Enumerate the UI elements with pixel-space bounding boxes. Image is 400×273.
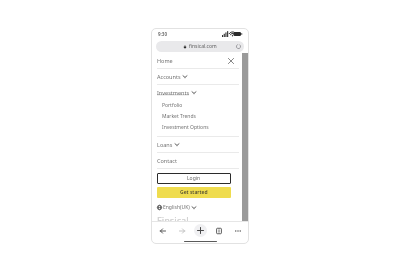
staticText: Home: [157, 57, 173, 64]
staticText: Portfolio: [162, 102, 183, 109]
button[interactable]: English(UK): [157, 204, 196, 211]
staticText: English(UK): [163, 204, 190, 211]
button[interactable]: Close menu: [226, 56, 235, 65]
button[interactable]: Forward: [175, 224, 188, 237]
button[interactable]: More options: [231, 224, 244, 237]
button[interactable]: Investments: [151, 85, 249, 100]
button[interactable]: Home: [151, 53, 249, 68]
staticText: Finsical: [157, 214, 189, 221]
button[interactable]: Accounts: [151, 69, 249, 84]
button[interactable]: Reload page: [235, 43, 242, 50]
button[interactable]: Loans: [151, 137, 249, 152]
staticText: finsical.com: [189, 43, 217, 50]
button[interactable]: Back: [156, 224, 169, 237]
button[interactable]: New tab: [194, 224, 207, 237]
staticText: Get started: [180, 189, 208, 196]
staticText: 9:30: [158, 31, 167, 37]
button[interactable]: Get started: [157, 187, 231, 198]
staticText: Accounts: [157, 73, 181, 80]
staticText: Loans: [157, 141, 173, 148]
button[interactable]: Investment Options: [151, 122, 249, 133]
button[interactable]: Tabs: [212, 224, 225, 237]
staticText: Investment Options: [162, 124, 209, 131]
staticText: Market Trends: [162, 113, 196, 120]
button[interactable]: Login: [157, 173, 231, 184]
button[interactable]: Market Trends: [151, 111, 249, 122]
staticText: Investments: [157, 89, 190, 96]
button[interactable]: Contact: [151, 153, 249, 168]
button[interactable]: Address bar finsical.com: [156, 41, 244, 52]
button[interactable]: Portfolio: [151, 100, 249, 111]
staticText: Contact: [157, 157, 177, 164]
staticText: Login: [187, 175, 201, 182]
